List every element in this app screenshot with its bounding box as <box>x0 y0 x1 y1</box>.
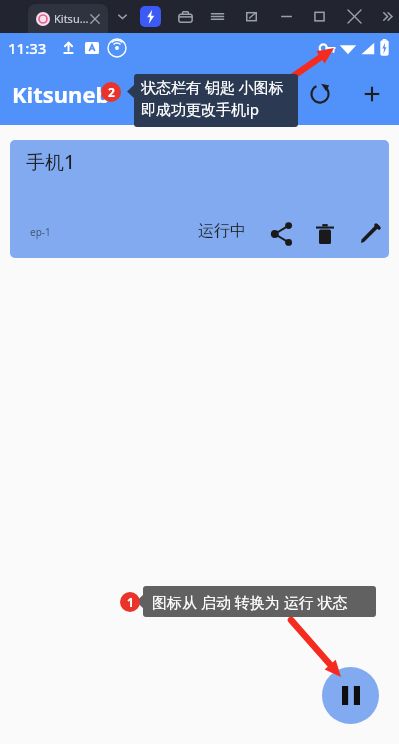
button[interactable]: 手机1 <box>10 140 389 258</box>
button[interactable]: Refresh <box>307 81 333 107</box>
staticText: Kitsuneb <box>12 79 110 109</box>
button[interactable]: Kitsu... <box>28 4 108 33</box>
staticText: 手机1 <box>26 149 75 175</box>
staticText: 图标从 启动 转换为 运行 状态 <box>152 592 348 612</box>
button[interactable]: Restore <box>242 7 261 26</box>
button[interactable]: Share <box>267 219 297 249</box>
button[interactable]: Boost <box>140 6 161 27</box>
staticText: 11:33 <box>8 38 47 58</box>
button[interactable]: Close tab <box>88 12 102 26</box>
button[interactable]: Maximize <box>310 7 329 26</box>
button[interactable]: Minimize <box>277 7 296 26</box>
staticText: 运行中 <box>198 221 246 241</box>
staticText: Kitsu... <box>54 11 89 26</box>
button[interactable]: Delete <box>310 219 340 249</box>
button[interactable]: Close window <box>345 7 364 26</box>
staticText: 2 <box>108 84 115 100</box>
button[interactable]: More <box>379 7 398 26</box>
button[interactable]: Tab list <box>114 8 131 25</box>
button[interactable]: Pause <box>322 667 379 724</box>
button[interactable]: Add <box>359 81 385 107</box>
staticText: 1 <box>127 594 134 610</box>
button[interactable]: Menu <box>208 7 227 26</box>
button[interactable]: Edit <box>355 219 385 249</box>
staticText: 即成功更改手机ip <box>141 99 260 119</box>
staticText: 状态栏有 钥匙 小图标 <box>141 77 284 97</box>
staticText: ep-1 <box>30 225 51 239</box>
button[interactable]: Extensions <box>176 7 195 26</box>
